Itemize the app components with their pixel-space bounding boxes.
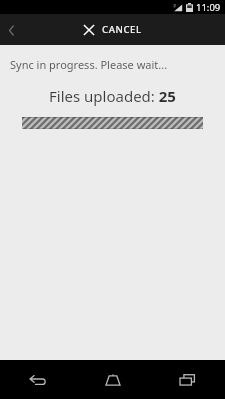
button[interactable]: Home (75, 360, 150, 399)
staticText: Files uploaded: 25 (49, 86, 176, 106)
button[interactable]: Recent apps (150, 360, 225, 399)
button[interactable]: Back (0, 19, 22, 41)
staticText: 11:09 (196, 1, 221, 14)
staticText: Sync in progress. Please wait... (10, 57, 168, 72)
button[interactable]: Back (0, 360, 75, 399)
staticText: CANCEL (102, 23, 142, 36)
button[interactable]: CANCEL (75, 19, 150, 40)
